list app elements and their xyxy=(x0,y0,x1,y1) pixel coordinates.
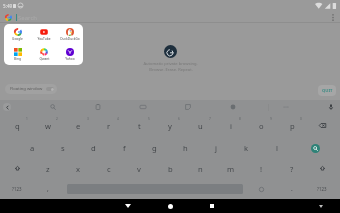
button[interactable]: ? xyxy=(277,157,307,178)
button[interactable]: y xyxy=(155,114,185,136)
staticText: o xyxy=(259,121,264,131)
button[interactable]: p xyxy=(277,114,307,136)
button[interactable]: o xyxy=(246,114,276,136)
button[interactable]: v xyxy=(124,157,154,178)
button[interactable]: Back xyxy=(3,103,11,111)
button[interactable]: r xyxy=(94,114,124,136)
button[interactable]: Recent apps xyxy=(205,199,219,213)
button[interactable]: t xyxy=(124,114,154,136)
staticText: w xyxy=(45,121,51,131)
button[interactable]: GIF xyxy=(136,100,150,114)
staticText: Search xyxy=(18,14,37,22)
button[interactable]: x xyxy=(63,157,93,178)
staticText: Qwant xyxy=(39,57,50,61)
button[interactable]: g xyxy=(139,136,169,157)
button[interactable]: YouTube xyxy=(31,24,57,44)
staticText: e xyxy=(76,121,81,131)
staticText: g xyxy=(152,143,157,153)
button[interactable]: Sticker xyxy=(181,100,195,114)
button[interactable]: n xyxy=(185,157,215,178)
staticText: 7 xyxy=(209,117,211,121)
staticText: l xyxy=(276,143,278,153)
staticText: Bing xyxy=(14,57,21,61)
staticText: 5:49 xyxy=(3,3,13,9)
button[interactable]: Hide keyboard xyxy=(316,201,326,211)
button[interactable]: k xyxy=(231,136,261,157)
staticText: 4 xyxy=(117,117,119,121)
staticText: 1 xyxy=(26,117,28,121)
staticText: c xyxy=(107,164,111,174)
staticText: , xyxy=(47,184,49,193)
button[interactable]: a xyxy=(17,136,47,157)
staticText: t xyxy=(138,121,141,131)
button[interactable]: Voice input xyxy=(324,100,338,114)
button[interactable]: Home xyxy=(163,199,177,213)
button[interactable]: Google xyxy=(4,24,31,44)
staticText: u xyxy=(198,121,203,131)
staticText: p xyxy=(290,121,295,131)
button[interactable]: i xyxy=(216,114,246,136)
staticText: ! xyxy=(260,164,263,174)
button[interactable]: h xyxy=(170,136,200,157)
button[interactable]: Shift xyxy=(312,158,332,178)
staticText: 5 xyxy=(148,117,150,121)
button[interactable]: QUIT xyxy=(318,85,336,96)
staticText: ?123 xyxy=(317,186,327,192)
button[interactable]: z xyxy=(33,157,63,178)
button[interactable]: m xyxy=(216,157,246,178)
button[interactable]: Yahoo xyxy=(57,44,83,65)
staticText: ? xyxy=(290,164,294,174)
staticText: d xyxy=(91,143,96,153)
button[interactable]: s xyxy=(48,136,78,157)
staticText: h xyxy=(183,143,188,153)
button[interactable]: Backspace xyxy=(312,115,332,135)
staticText: z xyxy=(46,164,50,174)
staticText: k xyxy=(244,143,249,153)
button[interactable]: q xyxy=(2,114,32,136)
button[interactable]: Shift xyxy=(7,158,27,178)
button[interactable]: DuckDuckGo xyxy=(57,24,83,44)
staticText: 8 xyxy=(239,117,241,121)
button[interactable]: Back xyxy=(121,199,135,213)
staticText: . xyxy=(291,184,293,193)
staticText: x xyxy=(76,164,81,174)
button[interactable]: e xyxy=(63,114,93,136)
button[interactable]: Emoji xyxy=(251,179,271,199)
staticText: m xyxy=(227,164,235,174)
button[interactable]: More options xyxy=(332,14,334,21)
button[interactable]: ?123 xyxy=(2,178,32,199)
staticText: y xyxy=(168,121,172,131)
button[interactable]: Bing xyxy=(4,44,31,65)
button[interactable]: Search xyxy=(46,100,60,114)
staticText: YouTube xyxy=(37,37,51,41)
button[interactable]: Theme xyxy=(226,100,240,114)
staticText: 2 xyxy=(56,117,58,121)
staticText: r xyxy=(107,121,111,131)
button[interactable]: ?123 xyxy=(307,178,337,199)
button[interactable]: w xyxy=(33,114,63,136)
staticText: 9 xyxy=(270,117,272,121)
staticText: Floating window xyxy=(10,86,43,92)
button[interactable]: u xyxy=(185,114,215,136)
staticText: v xyxy=(137,164,141,174)
button[interactable]: Search xyxy=(300,136,330,157)
button[interactable]: Floating window xyxy=(5,84,57,94)
button[interactable]: Clipboard xyxy=(91,100,105,114)
staticText: i xyxy=(230,121,232,131)
button[interactable]: c xyxy=(94,157,124,178)
button[interactable]: Search xyxy=(0,13,340,22)
staticText: a xyxy=(30,143,35,153)
staticText: QUIT xyxy=(322,88,333,94)
button[interactable]: f xyxy=(109,136,139,157)
staticText: 3 xyxy=(87,117,89,121)
button[interactable]: b xyxy=(155,157,185,178)
button[interactable]: d xyxy=(78,136,108,157)
button[interactable]: l xyxy=(262,136,292,157)
button[interactable]: j xyxy=(201,136,231,157)
button[interactable]: Qwant xyxy=(31,44,57,65)
